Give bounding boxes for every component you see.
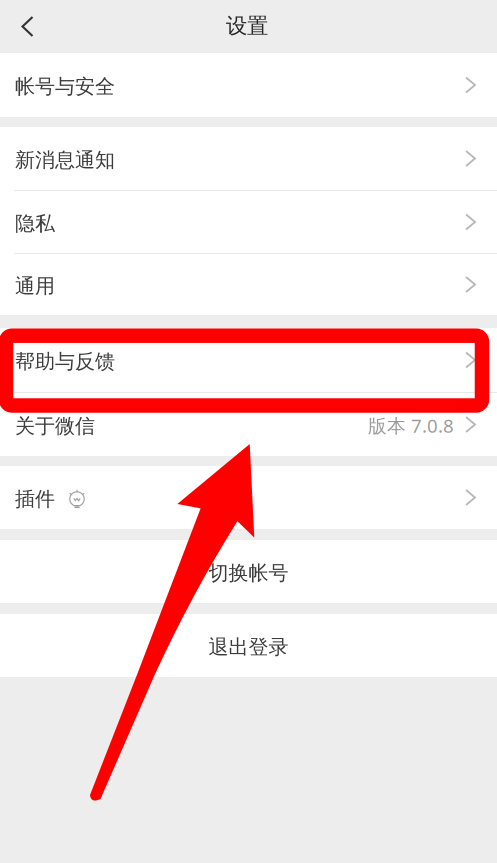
staticText: 帮助与反馈 bbox=[15, 349, 115, 374]
button[interactable]: 帮助与反馈 bbox=[0, 328, 497, 392]
button[interactable]: 帐号与安全 bbox=[0, 53, 497, 117]
staticText: 切换帐号 bbox=[208, 561, 288, 585]
button[interactable]: 通用 bbox=[0, 254, 497, 315]
button[interactable]: 退出登录 bbox=[0, 614, 497, 677]
staticText: 设置 bbox=[226, 13, 268, 39]
staticText: 关于微信 bbox=[15, 414, 95, 438]
staticText: 版本 7.0.8 bbox=[368, 413, 454, 438]
staticText: 通用 bbox=[15, 274, 55, 298]
staticText: 隐私 bbox=[15, 211, 55, 236]
button[interactable]: 隐私 bbox=[0, 191, 497, 253]
staticText: 帐号与安全 bbox=[15, 74, 115, 99]
staticText: 插件 bbox=[15, 487, 55, 511]
staticText: 退出登录 bbox=[208, 635, 288, 659]
button[interactable]: 插件 bbox=[0, 466, 497, 529]
staticText: 新消息通知 bbox=[15, 148, 115, 172]
button[interactable]: Back bbox=[0, 0, 55, 53]
button[interactable]: 切换帐号 bbox=[0, 540, 497, 603]
button[interactable]: 关于微信 bbox=[0, 393, 497, 456]
button[interactable]: 新消息通知 bbox=[0, 127, 497, 190]
